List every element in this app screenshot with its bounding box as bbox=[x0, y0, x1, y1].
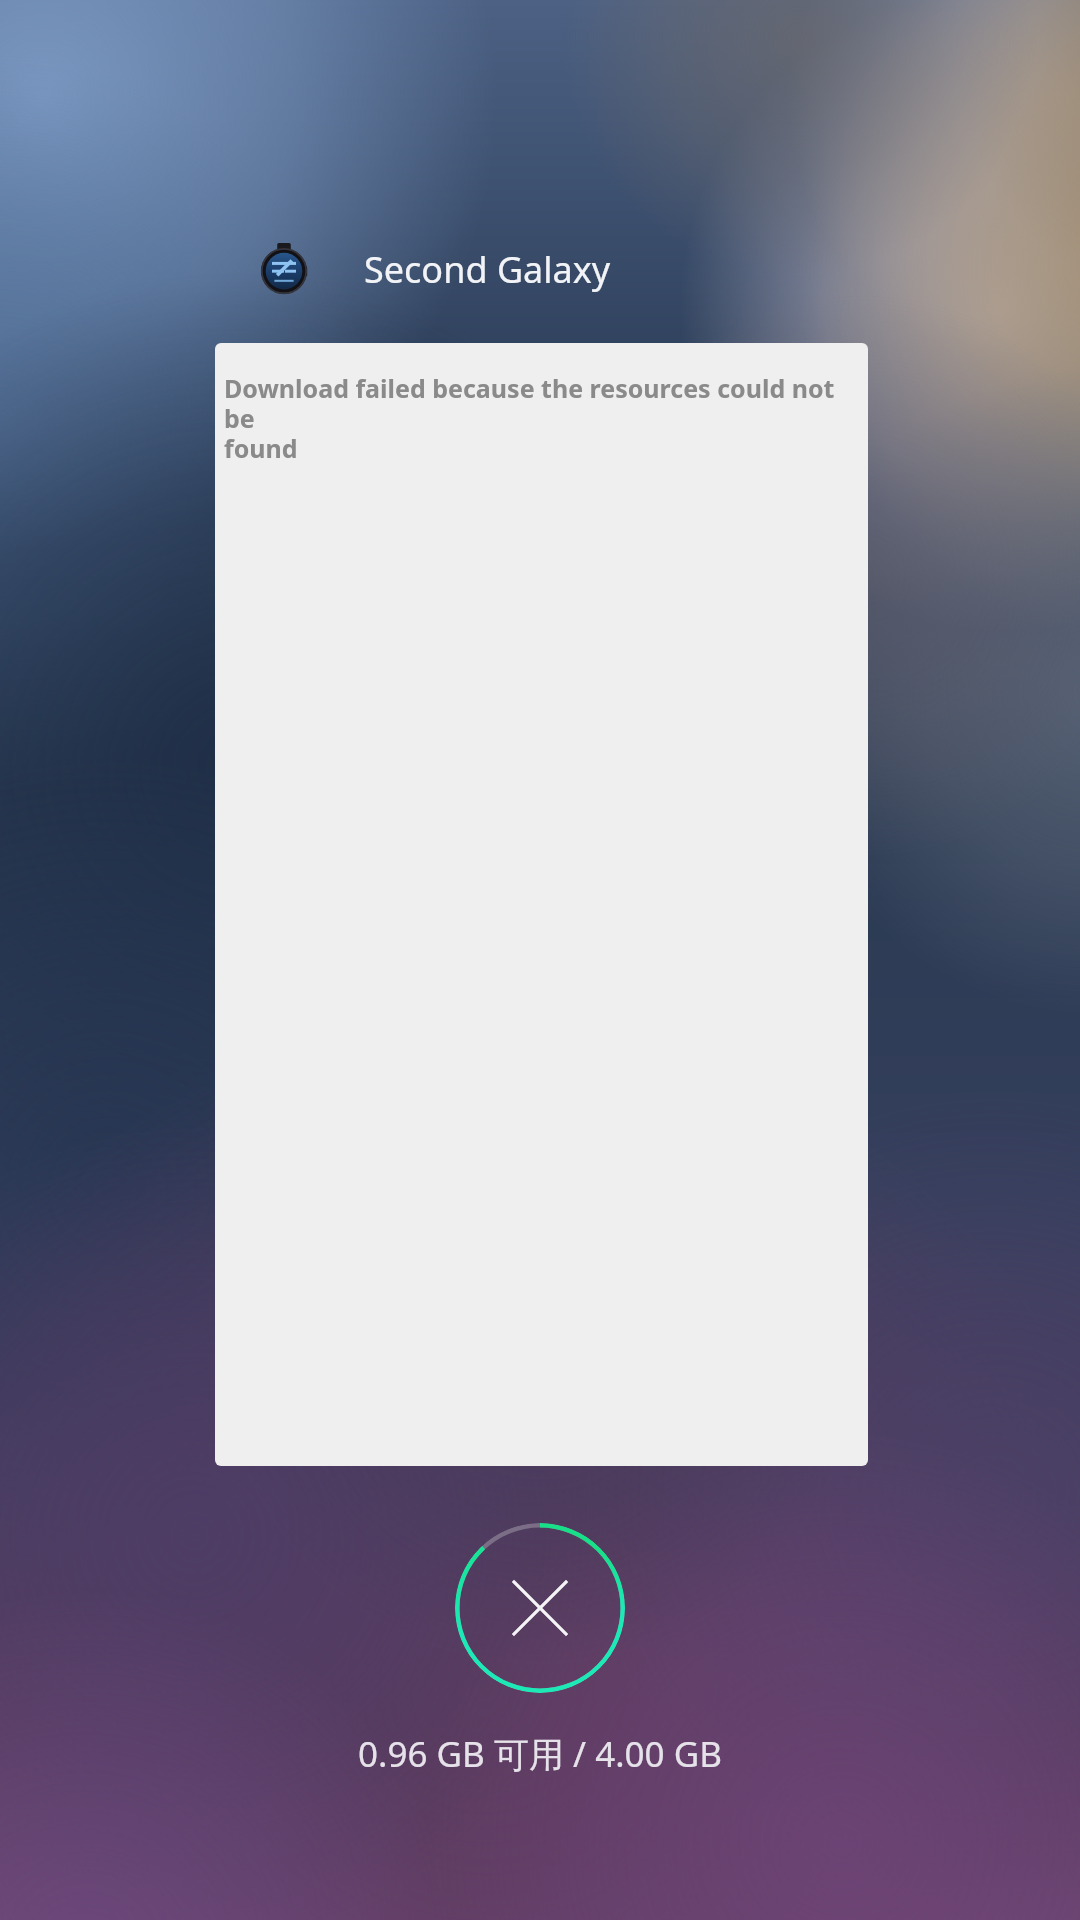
button[interactable]: Download failed because the resources co… bbox=[215, 343, 868, 1466]
button[interactable]: Second Galaxy bbox=[258, 243, 1080, 295]
staticText: 0.96 GB 可用 / 4.00 GB bbox=[0, 1730, 1080, 1778]
button[interactable]: Cancel download bbox=[455, 1523, 625, 1693]
staticText: Download failed because the resources co… bbox=[224, 371, 860, 465]
staticText: Second Galaxy bbox=[364, 245, 611, 294]
